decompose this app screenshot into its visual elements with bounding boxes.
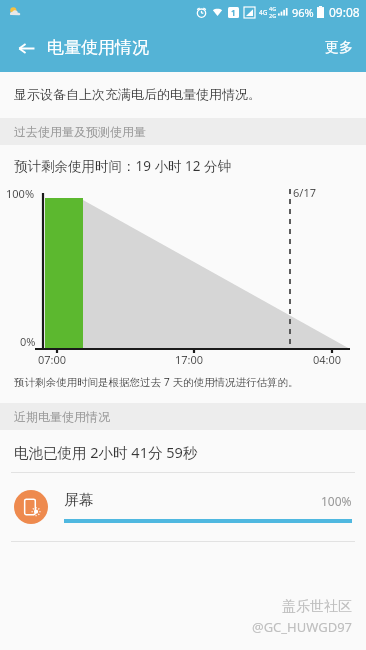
staticText: 6/17 — [293, 185, 316, 200]
staticText: @GC_HUWGD97 — [251, 618, 352, 636]
staticText: 预计剩余使用时间：19 小时 12 分钟 — [14, 157, 231, 175]
staticText: 2G — [269, 12, 277, 19]
staticText: 显示设备自上次充满电后的电量使用情况。 — [14, 86, 261, 102]
staticText: 4G — [259, 8, 268, 17]
staticText: 电量使用情况 — [47, 37, 149, 58]
staticText: 过去使用量及预测使用量 — [14, 124, 146, 139]
button[interactable]: 更多 — [312, 30, 366, 66]
staticText: 07:00 — [38, 352, 67, 367]
staticText: 盖乐世社区 — [282, 598, 352, 616]
staticText: 更多 — [325, 39, 353, 57]
staticText: 100% — [321, 493, 352, 509]
button[interactable]: 屏幕 — [0, 473, 366, 541]
staticText: 4G — [269, 5, 277, 12]
staticText: 0% — [20, 334, 36, 349]
staticText: 近期电量使用情况 — [14, 409, 110, 424]
staticText: 1 — [231, 7, 236, 18]
staticText: 电池已使用 2小时 41分 59秒 — [14, 442, 198, 462]
staticText: 17:00 — [175, 352, 204, 367]
staticText: 屏幕 — [64, 491, 321, 510]
button[interactable]: 返回 — [6, 28, 46, 68]
staticText: 100% — [6, 186, 35, 201]
staticText: 96% — [292, 5, 314, 20]
staticText: 04:00 — [313, 352, 342, 367]
staticText: 09:08 — [329, 4, 360, 20]
staticText: 预计剩余使用时间是根据您过去 7 天的使用情况进行估算的。 — [14, 375, 299, 389]
